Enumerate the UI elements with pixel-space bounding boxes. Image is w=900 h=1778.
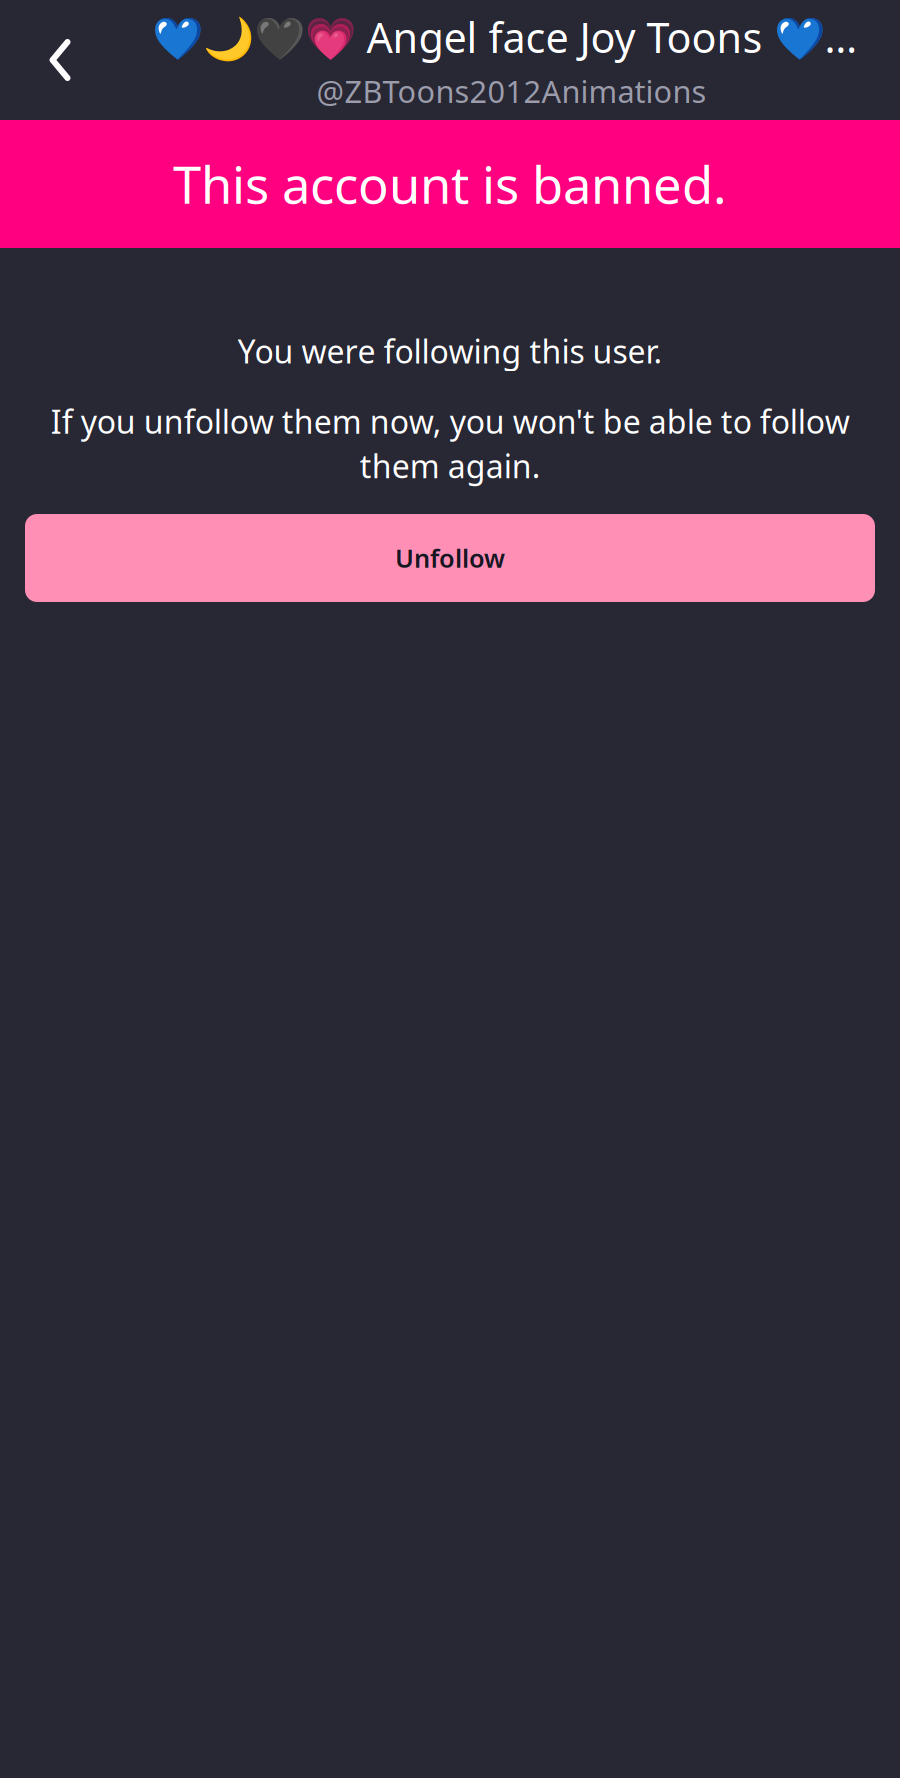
- staticText: Unfollow: [395, 541, 505, 575]
- staticText: 💙🌙🖤💗 Angel face Joy Toons 💙…: [151, 10, 857, 64]
- button[interactable]: Unfollow: [25, 514, 875, 602]
- staticText: You were following this user.: [237, 330, 662, 372]
- staticText: If you unfollow them now, you won't be a…: [50, 400, 849, 487]
- button[interactable]: Back: [0, 0, 120, 120]
- staticText: This account is banned.: [173, 150, 727, 218]
- staticText: @ZBToons2012Animations: [316, 71, 706, 111]
